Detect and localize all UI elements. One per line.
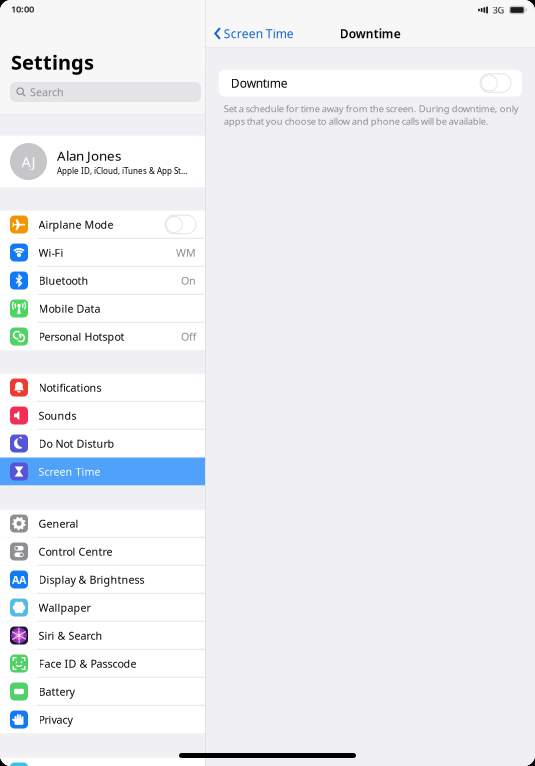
button[interactable]: Siri & Search: [0, 621, 205, 649]
button[interactable]: Wi-Fi: [0, 238, 205, 266]
staticText: Battery: [38, 684, 74, 699]
button[interactable]: AA: [0, 565, 205, 593]
staticText: AA: [12, 572, 26, 587]
button[interactable]: General: [0, 509, 205, 537]
button[interactable]: AJ: [0, 135, 205, 187]
staticText: Notifications: [38, 380, 101, 395]
button[interactable]: Privacy: [0, 705, 205, 733]
staticText: Face ID & Passcode: [38, 656, 136, 671]
staticText: Screen Time: [38, 464, 100, 479]
staticText: 10:00: [11, 3, 34, 15]
button[interactable]: Search: [0, 82, 205, 114]
button[interactable]: Airplane Mode: [0, 210, 205, 238]
button[interactable]: Sounds: [0, 401, 205, 429]
staticText: Bluetooth: [38, 273, 88, 288]
staticText: Personal Hotspot: [38, 329, 124, 344]
staticText: On: [181, 273, 196, 288]
button[interactable]: Wallpaper: [0, 593, 205, 621]
button[interactable]: Battery: [0, 677, 205, 705]
button[interactable]: Downtime: [206, 69, 535, 96]
staticText: AJ: [21, 152, 35, 171]
button[interactable]: Face ID & Passcode: [0, 649, 205, 677]
staticText: Mobile Data: [38, 301, 100, 316]
staticText: Set a schedule for time away from the sc…: [224, 102, 519, 127]
button[interactable]: Mobile Data: [0, 294, 205, 322]
staticText: Downtime: [231, 75, 288, 91]
staticText: Settings: [11, 49, 94, 75]
button[interactable]: Notifications: [0, 373, 205, 401]
staticText: Siri & Search: [38, 628, 102, 643]
staticText: Do Not Disturb: [38, 436, 114, 451]
button[interactable]: iTunes & App Store: [0, 757, 205, 766]
staticText: WM: [176, 245, 196, 260]
staticText: Display & Brightness: [38, 572, 144, 587]
button[interactable]: Control Centre: [0, 537, 205, 565]
staticText: Off: [181, 329, 196, 344]
button[interactable]: Bluetooth: [0, 266, 205, 294]
staticText: Sounds: [38, 408, 76, 423]
button[interactable]: Personal Hotspot: [0, 322, 205, 350]
staticText: Search: [30, 85, 64, 99]
staticText: Screen Time: [224, 25, 294, 41]
button[interactable]: Screen Time: [206, 21, 294, 45]
staticText: General: [38, 516, 78, 531]
staticText: Apple ID, iCloud, iTunes & App St…: [57, 165, 187, 176]
staticText: Airplane Mode: [38, 217, 113, 232]
staticText: Wallpaper: [38, 600, 90, 615]
staticText: Wi-Fi: [38, 245, 63, 260]
staticText: Downtime: [340, 25, 401, 41]
staticText: Privacy: [38, 712, 72, 727]
button[interactable]: Do Not Disturb: [0, 429, 205, 457]
button[interactable]: Screen Time: [0, 457, 205, 485]
staticText: 3G: [492, 4, 504, 16]
staticText: Alan Jones: [57, 147, 121, 164]
staticText: Control Centre: [38, 544, 112, 559]
